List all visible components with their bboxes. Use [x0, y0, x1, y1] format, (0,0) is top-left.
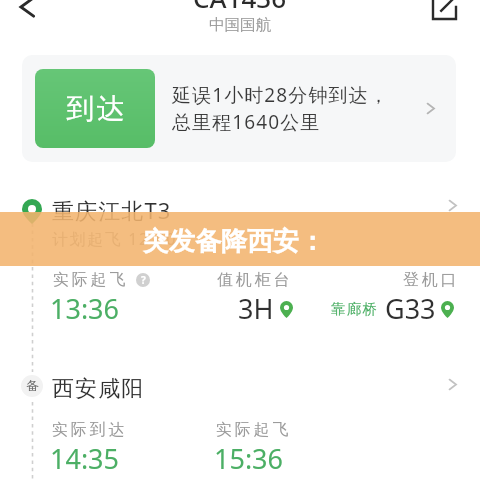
staticText: 突发备降西安：: [143, 225, 325, 258]
staticText: 延误1小时28分钟到达，: [172, 82, 389, 108]
button[interactable]: Back: [10, 0, 44, 24]
staticText: 重庆江北T3: [52, 195, 172, 225]
staticText: 14:35: [50, 440, 120, 477]
staticText: 中国国航: [209, 15, 271, 35]
button[interactable]: Share: [427, 0, 461, 24]
staticText: 15:36: [214, 440, 284, 477]
button[interactable]: 到达: [22, 55, 456, 162]
staticText: 靠廊桥: [331, 300, 379, 318]
staticText: 实际起飞: [216, 420, 292, 440]
staticText: 备: [26, 378, 39, 394]
staticText: 西安咸阳: [52, 375, 145, 403]
button[interactable]: 备: [0, 370, 480, 410]
staticText: 3H: [238, 290, 274, 327]
staticText: G33: [385, 290, 436, 327]
staticText: 实际到达: [52, 420, 128, 440]
button[interactable]: 重庆江北T3: [0, 190, 480, 242]
staticText: 到达: [65, 91, 126, 126]
staticText: 登机口: [403, 270, 460, 290]
staticText: 值机柜台: [217, 270, 293, 290]
staticText: ?: [141, 273, 146, 287]
staticText: 计划起飞 12:00: [52, 228, 178, 250]
staticText: CA1436: [193, 0, 287, 15]
staticText: 实际起飞: [53, 270, 129, 290]
staticText: 总里程1640公里: [172, 109, 321, 135]
staticText: 13:36: [50, 290, 120, 327]
